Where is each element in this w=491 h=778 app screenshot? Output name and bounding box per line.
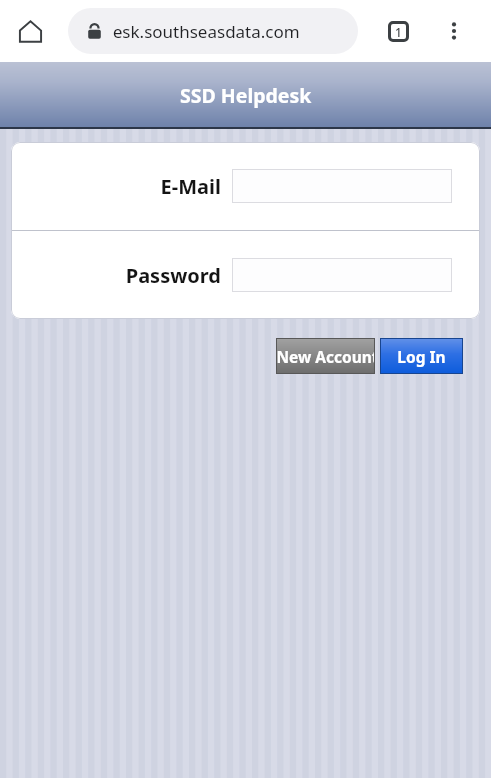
staticText: New Account — [276, 346, 375, 367]
button[interactable]: New Account — [276, 338, 375, 374]
staticText: еsk.southseasdata.com — [113, 20, 300, 43]
staticText: E-Mail — [11, 173, 221, 200]
button[interactable]: Home — [8, 9, 52, 53]
staticText: 1 — [395, 24, 402, 40]
staticText: Log In — [397, 346, 446, 367]
button[interactable]: More options — [433, 10, 475, 52]
button[interactable]: Log In — [380, 338, 463, 374]
button[interactable] — [232, 258, 452, 292]
staticText: SSD Helpdesk — [180, 82, 312, 109]
button[interactable]: Tabs, 1 open — [377, 10, 419, 52]
staticText: Password — [11, 262, 221, 289]
button[interactable]: еsk.southseasdata.com — [68, 8, 358, 54]
button[interactable] — [232, 169, 452, 203]
